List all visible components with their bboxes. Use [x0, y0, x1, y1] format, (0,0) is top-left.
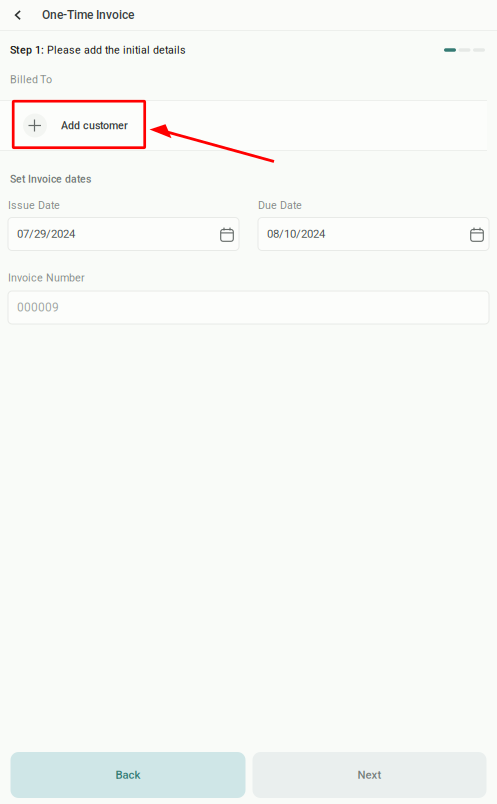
staticText: Due Date	[258, 199, 302, 211]
staticText: 07/29/2024	[17, 227, 75, 241]
staticText: 000009	[17, 300, 59, 315]
staticText: Add customer	[61, 119, 128, 132]
button[interactable]: Add customer	[0, 100, 487, 151]
button[interactable]: Back	[10, 752, 245, 798]
staticText: Back	[115, 768, 140, 782]
staticText: Next	[357, 768, 381, 782]
staticText: One-Time Invoice	[42, 8, 134, 22]
button[interactable]: 08/10/2024	[258, 217, 489, 250]
staticText: Issue Date	[8, 199, 60, 211]
staticText: Billed To	[10, 73, 52, 86]
button[interactable]: Back	[3, 0, 33, 30]
button[interactable]: 000009	[8, 291, 489, 324]
staticText: Step 1: Please add the initial details	[10, 44, 186, 56]
staticText: Set Invoice dates	[10, 173, 91, 185]
button[interactable]: 07/29/2024	[8, 217, 239, 250]
staticText: 08/10/2024	[267, 227, 325, 241]
button[interactable]: Next	[252, 752, 486, 798]
staticText: Invoice Number	[8, 271, 85, 284]
